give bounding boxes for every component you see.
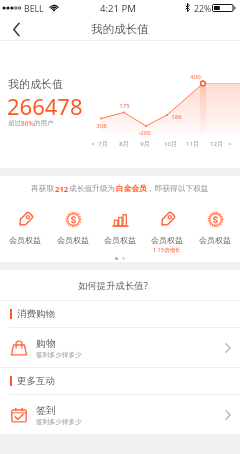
staticText: 175: [119, 102, 130, 110]
staticText: 4:21 PM: [100, 2, 137, 15]
staticText: 12月: [210, 140, 223, 148]
button[interactable]: Back: [0, 17, 32, 41]
staticText: 会员权益: [9, 235, 41, 245]
staticText: 会员权益: [104, 235, 136, 245]
staticText: 签到多少得多少: [36, 351, 82, 359]
staticText: 7月: [98, 140, 108, 148]
staticText: 的用户: [34, 119, 54, 127]
staticText: 超过: [8, 119, 21, 127]
staticText: 10月: [164, 140, 177, 148]
button[interactable]: 会员权益: [3, 211, 47, 245]
staticText: ，即获得以下权益: [147, 184, 209, 194]
staticText: 成长值升级为: [69, 184, 116, 194]
staticText: 如何提升成长值?: [78, 279, 148, 292]
staticText: 212: [55, 184, 69, 194]
staticText: 更多互动: [17, 375, 55, 387]
staticText: 会员权益: [57, 235, 89, 245]
staticText: 消费购物: [17, 308, 55, 320]
staticText: 我的成长值: [8, 77, 63, 91]
staticText: -200: [138, 129, 151, 137]
staticText: 签到: [36, 404, 56, 417]
staticText: BELL: [24, 3, 44, 15]
button[interactable]: 购物: [0, 328, 240, 367]
staticText: 签到多少得多少: [36, 418, 82, 426]
staticText: 白金会员: [116, 184, 147, 194]
staticText: 186: [171, 113, 182, 121]
button[interactable]: 会员权益: [51, 211, 95, 245]
staticText: 会员权益: [199, 235, 231, 245]
button[interactable]: 签到: [0, 395, 240, 434]
staticText: 1.15倍增长: [153, 246, 181, 254]
staticText: 9月: [140, 140, 150, 148]
staticText: 会员权益: [151, 235, 183, 245]
button[interactable]: 会员权益: [193, 211, 237, 245]
staticText: 400: [190, 73, 201, 81]
staticText: 11月: [186, 140, 199, 148]
staticText: 86%: [21, 119, 34, 128]
staticText: 22%: [194, 3, 212, 15]
staticText: 308: [96, 122, 107, 130]
staticText: 再获取: [31, 184, 55, 194]
button[interactable]: 会员权益: [98, 211, 142, 245]
staticText: 266478: [7, 91, 83, 121]
staticText: 我的成长值: [91, 22, 149, 36]
staticText: <: [91, 140, 95, 148]
button[interactable]: 会员权益: [145, 211, 189, 254]
staticText: >: [228, 140, 232, 148]
staticText: 购物: [36, 337, 56, 350]
staticText: 8月: [119, 140, 129, 148]
